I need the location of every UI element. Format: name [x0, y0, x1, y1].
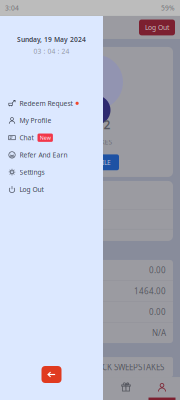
button[interactable]: Rewards [108, 377, 144, 400]
button[interactable]: Profile [144, 377, 180, 400]
staticText: Redeem Request [19, 99, 72, 108]
button[interactable]: Back [41, 366, 61, 383]
staticText: Refer And Earn [19, 150, 67, 159]
button[interactable]: Menu item [7, 181, 173, 209]
button[interactable]: My Profile [0, 112, 103, 129]
staticText: My Profile [19, 116, 51, 125]
staticText: Log Out [145, 23, 169, 32]
staticText: 03 : 04 : 24 [33, 47, 69, 56]
staticText: 3:04 [5, 3, 19, 12]
staticText: 0.00 [149, 265, 166, 275]
staticText: Sunday, 19 May 2024 [17, 35, 86, 44]
button[interactable]: Settings [0, 163, 103, 181]
button[interactable]: Contests [36, 377, 72, 400]
staticText: 59% [161, 3, 175, 12]
button[interactable]: Log Out [0, 181, 103, 198]
staticText: 0.00 [149, 307, 166, 317]
staticText: 1464.00 [134, 286, 166, 296]
button[interactable]: Redeem Request [0, 95, 103, 112]
button[interactable]: Refer And Earn [0, 146, 103, 163]
staticText: N/A [152, 327, 166, 338]
staticText: Log Out [19, 185, 43, 194]
button[interactable]: Log Out [139, 19, 175, 35]
button[interactable]: Chat [0, 129, 103, 146]
button[interactable]: EDIT PROFILE [61, 154, 119, 170]
button[interactable]: Menu item [7, 229, 173, 240]
staticText: Chat [19, 133, 33, 142]
staticText: EDIT PROFILE [69, 158, 111, 167]
staticText: Settings [19, 168, 44, 177]
button[interactable]: Menu item [7, 210, 173, 229]
staticText: USER 2 [69, 117, 110, 132]
staticText: New [40, 134, 51, 141]
button[interactable]: Tickets [72, 377, 108, 400]
staticText: SWEEPSTAKES [67, 138, 112, 146]
staticText: GET CASHBACK SWEEPSTAKES [56, 362, 164, 372]
button[interactable]: GET CASHBACK SWEEPSTAKES [7, 357, 173, 377]
